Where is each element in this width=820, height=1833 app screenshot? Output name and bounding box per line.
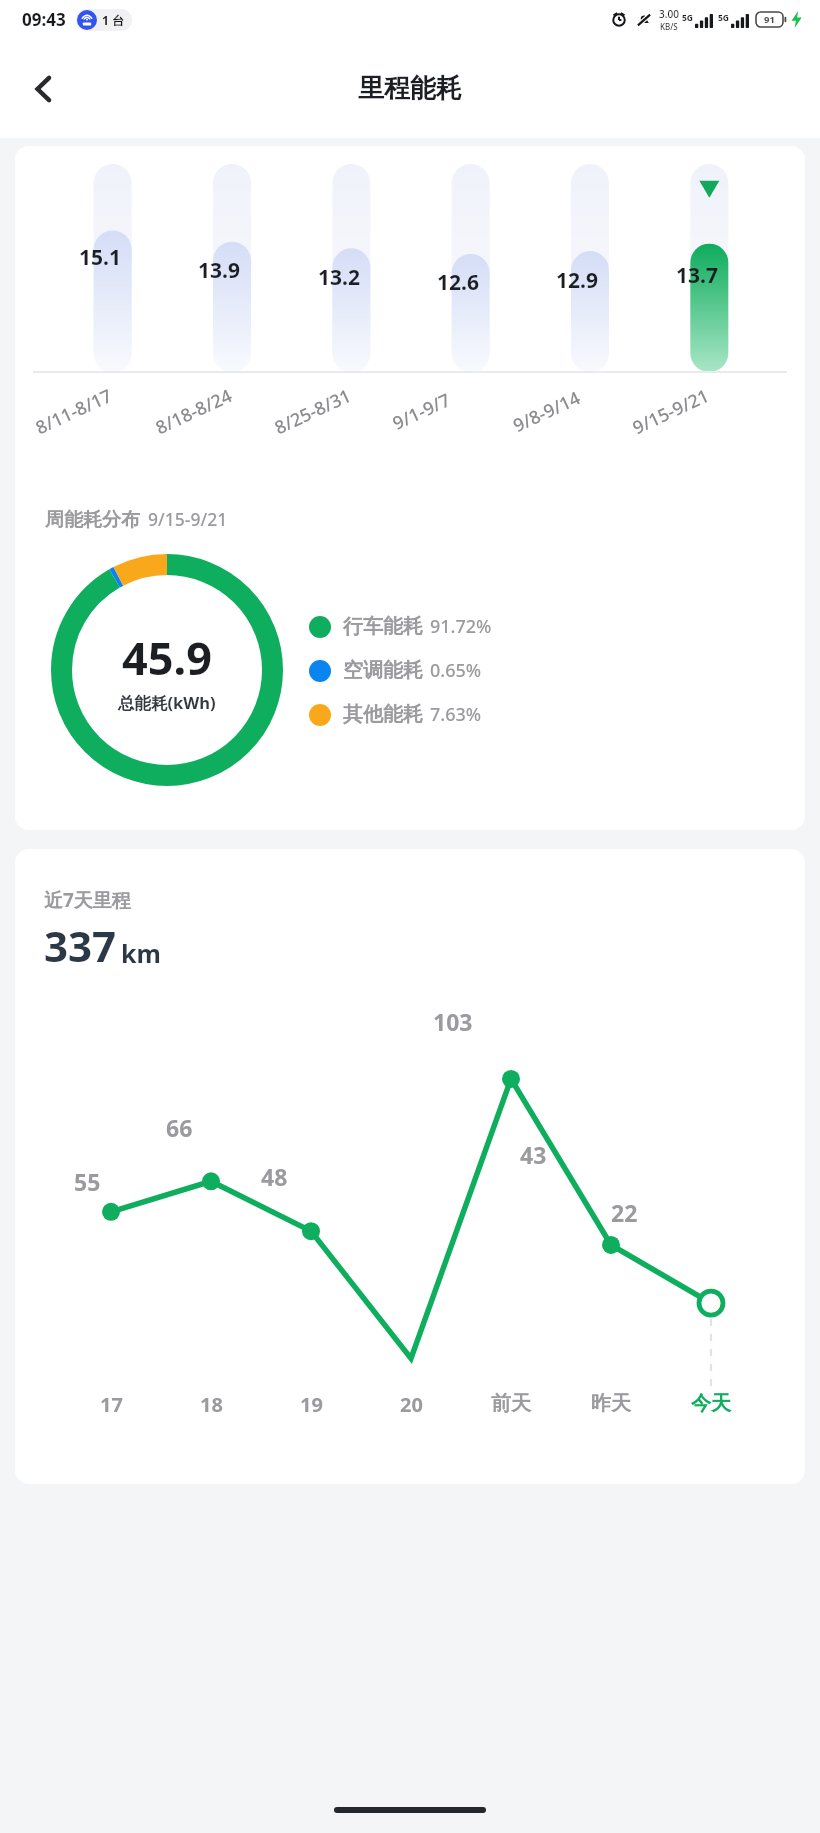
staticText: 8/18-8/24: [152, 383, 236, 440]
staticText: 9/8-9/14: [509, 385, 585, 438]
button[interactable]: 其他能耗: [309, 702, 482, 727]
staticText: km: [121, 936, 161, 970]
staticText: 近7天里程: [44, 887, 131, 913]
staticText: 48: [261, 1161, 288, 1192]
staticText: 其他能耗: [343, 702, 423, 727]
staticText: 8/25-8/31: [271, 383, 355, 440]
staticText: 1 台: [102, 12, 124, 28]
button[interactable]: 今天: [661, 1391, 761, 1416]
button[interactable]: 昨天: [561, 1391, 661, 1416]
button[interactable]: 空调能耗: [309, 658, 482, 683]
staticText: 今天: [691, 1391, 731, 1416]
staticText: 3.00: [659, 7, 679, 21]
staticText: 13.7: [676, 261, 718, 290]
staticText: 5G: [718, 12, 730, 24]
button[interactable]: Back: [14, 59, 74, 119]
staticText: 22: [611, 1197, 638, 1228]
staticText: 43: [520, 1139, 547, 1170]
staticText: 里程能耗: [358, 72, 462, 105]
other: Silent: [636, 12, 652, 28]
staticText: 周能耗分布: [45, 508, 140, 532]
staticText: 103: [433, 1006, 473, 1037]
staticText: 91.72%: [430, 614, 492, 639]
staticText: 12.9: [556, 266, 598, 295]
staticText: 55: [74, 1166, 101, 1197]
staticText: KB/S: [660, 21, 678, 32]
other: Alarm: [611, 12, 627, 28]
staticText: 12.6: [437, 268, 479, 297]
staticText: 5G: [682, 12, 694, 24]
staticText: 8/11-8/17: [32, 383, 116, 440]
staticText: 昨天: [591, 1391, 631, 1416]
staticText: 13.9: [198, 256, 240, 285]
staticText: 总能耗(kWh): [118, 691, 216, 714]
button[interactable]: 17: [61, 1391, 161, 1418]
staticText: 45.9: [122, 627, 212, 688]
staticText: 15.1: [79, 243, 121, 272]
staticText: 行车能耗: [343, 614, 423, 639]
staticText: 9/15-9/21: [148, 507, 228, 531]
staticText: 19: [300, 1391, 323, 1418]
staticText: 9/1-9/7: [389, 387, 454, 436]
staticText: 17: [100, 1391, 123, 1418]
staticText: 337: [44, 917, 117, 974]
staticText: 空调能耗: [343, 658, 423, 683]
staticText: 09:43: [22, 8, 66, 31]
staticText: 前天: [491, 1391, 531, 1416]
staticText: 7.63%: [430, 702, 482, 727]
staticText: 66: [166, 1112, 193, 1143]
button[interactable]: 18: [161, 1391, 261, 1418]
button[interactable]: 1 台: [77, 9, 131, 31]
button[interactable]: 19: [261, 1391, 361, 1418]
staticText: 0.65%: [430, 658, 482, 683]
button[interactable]: 行车能耗: [309, 614, 492, 639]
staticText: 20: [400, 1391, 423, 1418]
staticText: 9/15-9/21: [629, 383, 713, 440]
staticText: 18: [200, 1391, 223, 1418]
button[interactable]: 前天: [461, 1391, 561, 1416]
button[interactable]: 20: [361, 1391, 461, 1418]
staticText: 13.2: [318, 263, 360, 292]
staticText: 91: [764, 13, 775, 26]
